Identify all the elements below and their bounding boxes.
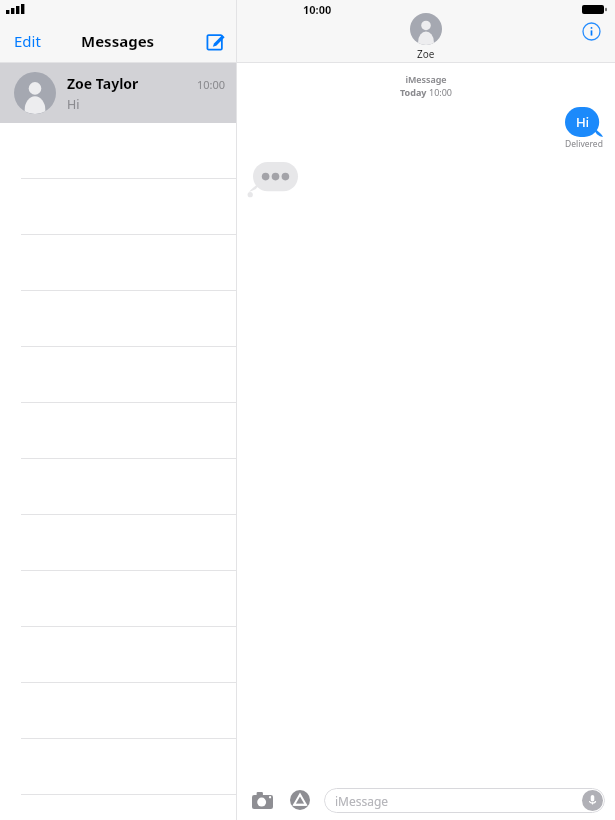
staticText: Edit (14, 31, 41, 51)
button[interactable]: Dictate (582, 790, 603, 811)
button[interactable]: Compose new message (198, 24, 232, 58)
button[interactable]: App Store (285, 785, 315, 815)
button[interactable]: Zoe Taylor (0, 63, 236, 123)
staticText: Delivered (565, 138, 603, 150)
button[interactable]: Zoe (410, 13, 442, 61)
staticText: 10:00 (429, 86, 453, 98)
staticText: Today (400, 86, 429, 98)
button[interactable]: Take photo (247, 785, 277, 815)
button[interactable]: Details (578, 18, 604, 44)
staticText: Hi (67, 96, 80, 113)
button[interactable]: iMessage (324, 788, 605, 813)
staticText: Hi (576, 113, 589, 131)
staticText: Zoe Taylor (67, 74, 139, 93)
staticText: 10:00 (303, 2, 332, 17)
staticText: Zoe (417, 47, 435, 61)
staticText: iMessage (405, 73, 447, 85)
staticText: iMessage (335, 793, 389, 809)
staticText: Messages (81, 31, 155, 51)
button[interactable]: Edit (4, 25, 51, 57)
staticText: 10:00 (197, 77, 226, 92)
